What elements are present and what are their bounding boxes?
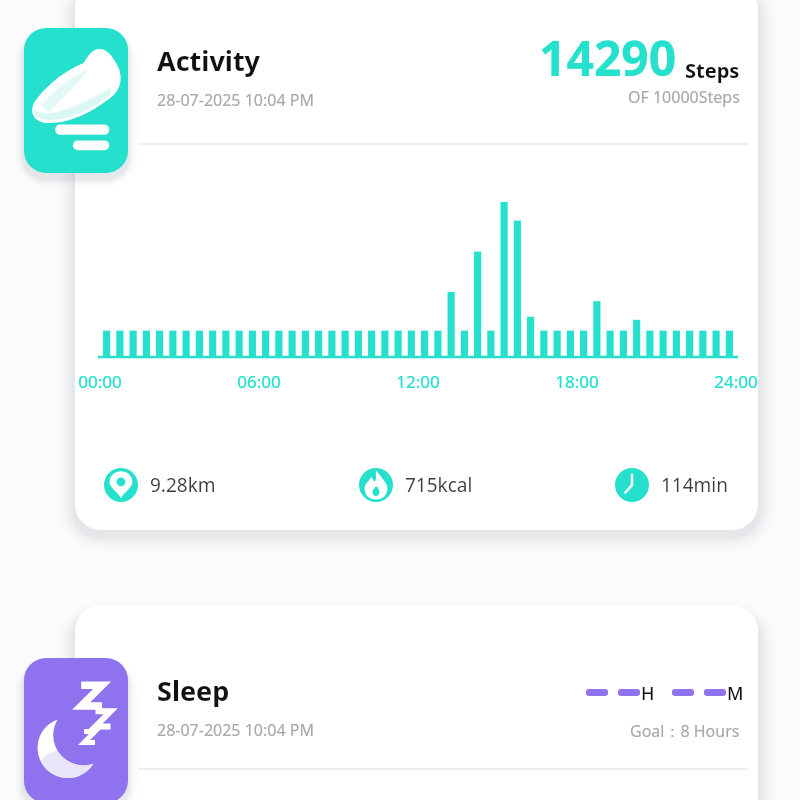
staticText: 24:00 [703,370,769,393]
staticText: OF 10000Steps [628,86,740,108]
staticText: H [641,681,655,706]
staticText: 14290 [539,25,677,90]
button[interactable]: Activity [0,0,800,534]
staticText: 12:00 [385,370,451,393]
staticText: Sleep [157,672,230,709]
staticText: 18:00 [544,370,610,393]
staticText: 00:00 [67,370,133,393]
staticText: 715kcal [405,472,473,498]
staticText: 9.28km [150,472,216,498]
staticText: 06:00 [226,370,292,393]
staticText: 114min [661,472,729,498]
staticText: Activity [157,42,261,79]
staticText: 28-07-2025 10:04 PM [157,89,314,111]
button[interactable]: Sleep [0,605,800,800]
button[interactable]: Sleep [24,658,128,800]
staticText: M [727,681,744,706]
staticText: Goal：8 Hours [630,720,740,742]
staticText: 28-07-2025 10:04 PM [157,719,314,741]
button[interactable]: Activity [24,28,128,173]
staticText: Steps [685,57,740,84]
